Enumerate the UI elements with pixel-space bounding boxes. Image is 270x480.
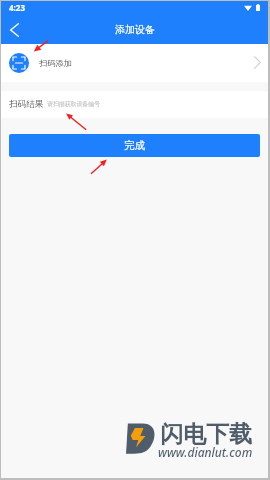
- staticText: 闪电下载: [160, 420, 252, 449]
- button[interactable]: Back: [1, 16, 28, 43]
- button[interactable]: 扫码添加: [1, 44, 268, 82]
- staticText: 扫码添加: [39, 58, 72, 68]
- staticText: 扫码结果: [9, 99, 44, 110]
- staticText: www.dianlut.com: [158, 444, 253, 460]
- staticText: 4:23: [9, 2, 25, 13]
- staticText: 完成: [124, 139, 145, 152]
- staticText: 请扫描获取设备编号: [47, 100, 101, 107]
- button[interactable]: 完成: [9, 134, 260, 157]
- staticText: 添加设备: [115, 23, 155, 36]
